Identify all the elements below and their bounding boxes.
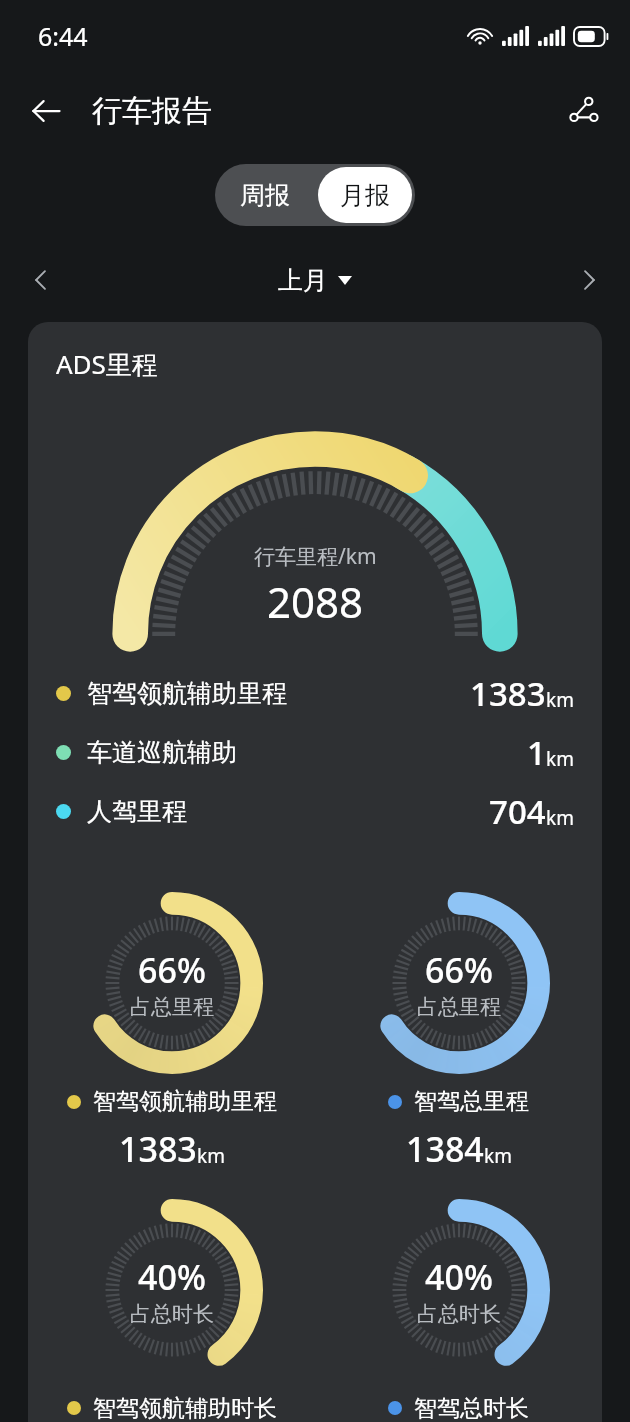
staticText: km [546,687,574,713]
staticText: km [197,1143,225,1169]
button[interactable]: 周报 [215,164,315,226]
button[interactable]: Previous month [16,255,66,305]
staticText: 1383 [470,671,546,716]
staticText: km [484,1143,512,1169]
staticText: ADS里程 [56,346,158,382]
staticText: 上月 [278,265,328,296]
staticText: 人驾里程 [87,796,187,827]
staticText: 704 [489,789,546,834]
button[interactable]: 40% [28,1194,315,1422]
staticText: 2088 [267,573,364,630]
staticText: 占总时长 [130,1301,214,1327]
button[interactable]: 66% [28,887,315,1172]
staticText: 月报 [340,180,390,211]
staticText: 1 [527,730,546,775]
button[interactable]: 智驾领航辅助里程 [28,664,602,723]
button[interactable]: 人驾里程 [28,782,602,841]
button[interactable]: 40% [315,1194,602,1422]
staticText: 行车里程/km [254,542,377,571]
staticText: 40% [138,1254,206,1300]
staticText: 6:44 [38,19,88,53]
staticText: 周报 [240,180,290,211]
staticText: 占总里程 [417,994,501,1020]
button[interactable]: 车道巡航辅助 [28,723,602,782]
button[interactable]: 月报 [318,167,412,223]
staticText: 1383 [119,1126,197,1172]
staticText: 66% [138,947,206,993]
staticText: km [546,746,574,772]
staticText: 智驾领航辅助里程 [93,1087,277,1116]
button[interactable]: 上月 [270,261,360,300]
staticText: 40% [425,1254,493,1300]
staticText: 66% [425,947,493,993]
staticText: 智驾总里程 [414,1087,529,1116]
button[interactable]: Back [20,85,72,137]
staticText: km [546,805,574,831]
button[interactable]: Share [556,84,610,138]
button[interactable]: 66% [315,887,602,1172]
staticText: 1384 [406,1126,484,1172]
staticText: 占总里程 [130,994,214,1020]
staticText: 车道巡航辅助 [87,737,237,768]
staticText: 占总时长 [417,1301,501,1327]
staticText: 行车报告 [92,92,212,130]
button[interactable]: Next month [564,255,614,305]
staticText: 智驾总时长 [414,1394,529,1422]
staticText: 智驾领航辅助里程 [87,678,287,709]
staticText: 智驾领航辅助时长 [93,1394,277,1422]
